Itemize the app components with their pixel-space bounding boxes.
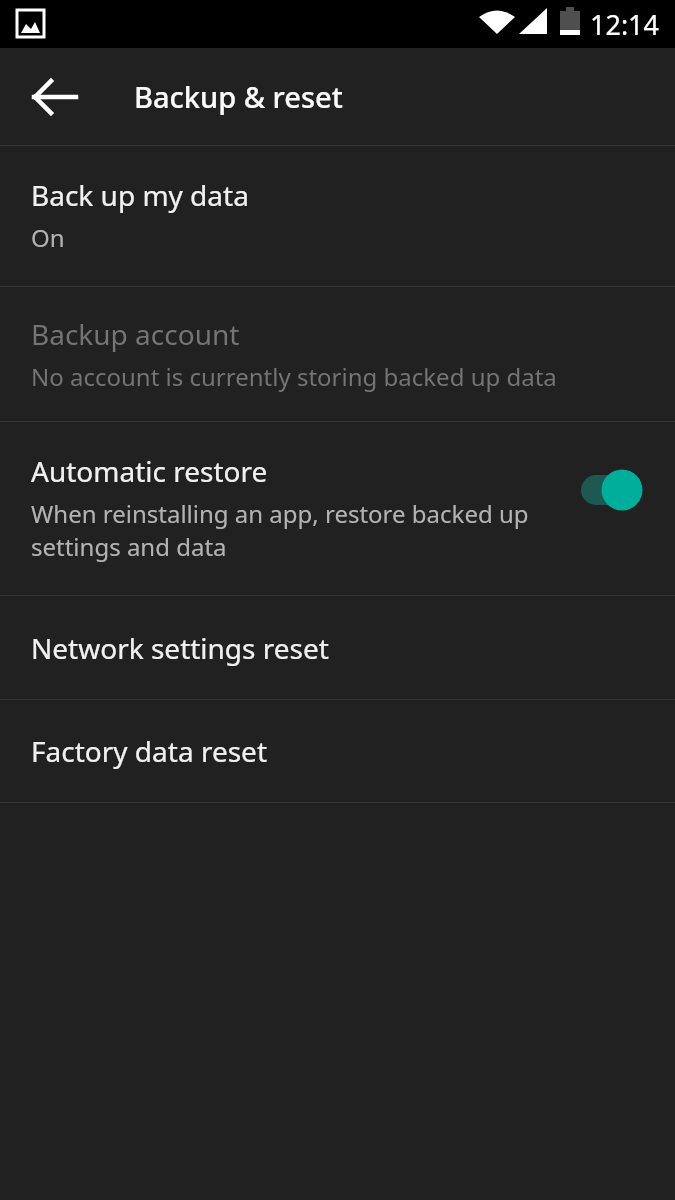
button[interactable]: Network settings reset xyxy=(0,596,675,699)
staticText: On xyxy=(31,221,65,254)
button[interactable]: Navigate up xyxy=(18,60,92,134)
staticText: Network settings reset xyxy=(31,629,329,667)
button[interactable]: Factory data reset xyxy=(0,700,675,802)
staticText: Back up my data xyxy=(31,176,249,214)
staticText: 12:14 xyxy=(590,6,660,43)
button[interactable]: Backup account xyxy=(0,287,675,421)
button[interactable]: Automatic restore toggle, on xyxy=(579,468,643,512)
staticText: Backup account xyxy=(31,315,240,353)
staticText: No account is currently storing backed u… xyxy=(31,360,557,393)
button[interactable]: Back up my data xyxy=(0,146,675,286)
staticText: When reinstalling an app, restore backed… xyxy=(31,497,535,563)
staticText: Automatic restore xyxy=(31,452,268,490)
button[interactable]: Automatic restore xyxy=(0,422,675,595)
staticText: Backup & reset xyxy=(134,77,343,116)
staticText: Factory data reset xyxy=(31,732,267,770)
